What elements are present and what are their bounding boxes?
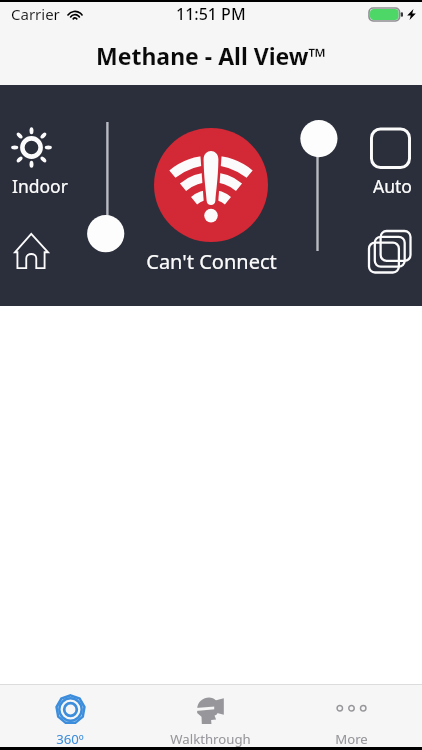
button[interactable]: More [281,685,422,750]
button[interactable]: Connection status [154,128,268,242]
staticText: More [335,730,368,748]
button[interactable]: Walkthrough [140,685,281,750]
button[interactable]: Indoor brightness [4,100,62,195]
staticText: Can't Connect [146,248,277,275]
staticText: Methane - All View™ [96,40,327,71]
staticText: Carrier [11,4,60,24]
staticText: Walkthrough [170,730,251,748]
button[interactable]: Auto mode [366,124,416,196]
button[interactable]: Layers [366,228,414,276]
button[interactable]: 360º [0,685,140,750]
staticText: Indoor [12,174,68,198]
button[interactable]: Home [8,229,54,275]
staticText: Auto [373,174,412,198]
staticText: 11:51 PM [176,3,246,25]
staticText: 360º [56,730,84,748]
